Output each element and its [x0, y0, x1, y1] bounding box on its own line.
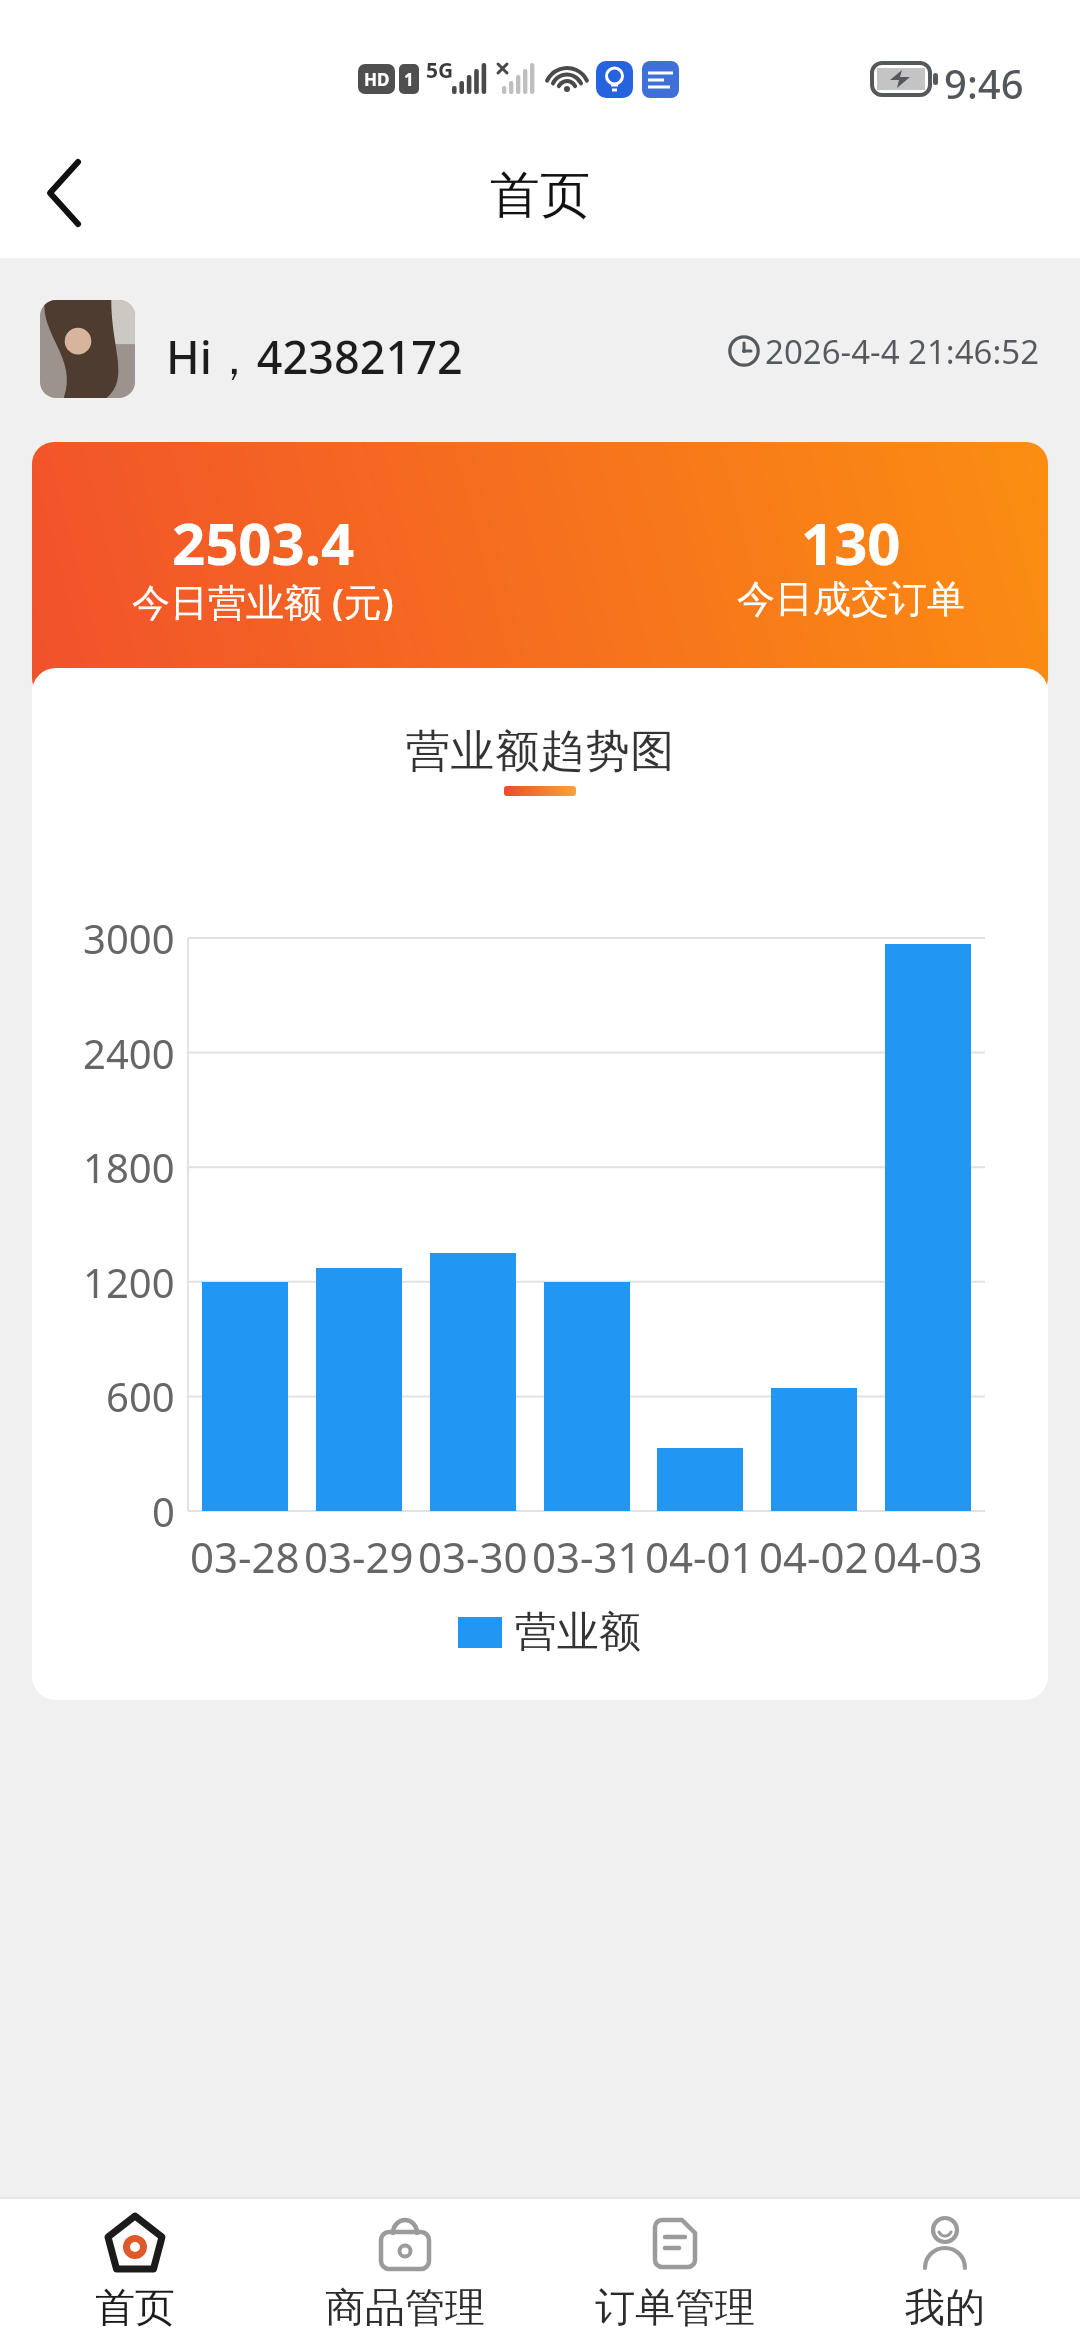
staticText: 1 — [404, 68, 414, 91]
staticText: 03-31 — [532, 1528, 642, 1582]
staticText: 订单管理 — [595, 2282, 755, 2332]
button[interactable] — [40, 300, 135, 398]
staticText: 03-28 — [190, 1528, 300, 1582]
staticText: 04-03 — [873, 1528, 983, 1582]
staticText: HD — [364, 68, 390, 91]
staticText: 03-29 — [304, 1528, 414, 1582]
staticText: 9:46 — [944, 56, 1024, 100]
staticText: 03-30 — [418, 1528, 528, 1582]
staticText: 2503.4 — [172, 503, 355, 571]
staticText: 04-01 — [645, 1528, 755, 1582]
button[interactable] — [30, 150, 100, 236]
staticText: 3000 — [83, 911, 175, 965]
button[interactable]: 订单管理 — [540, 2199, 810, 2340]
button[interactable]: 首页 — [0, 2199, 270, 2340]
staticText: 1200 — [83, 1255, 175, 1309]
staticText: 5G — [426, 56, 454, 84]
staticText: 0 — [152, 1484, 175, 1538]
button[interactable]: 2503.4 — [32, 442, 1048, 700]
staticText: 营业额趋势图 — [405, 724, 675, 779]
staticText: 2400 — [83, 1026, 175, 1080]
staticText: 营业额 — [515, 1606, 641, 1659]
staticText: 商品管理 — [325, 2282, 485, 2332]
button[interactable]: 我的 — [810, 2199, 1080, 2340]
staticText: 首页 — [490, 164, 590, 222]
staticText: 130 — [801, 503, 901, 571]
staticText: 600 — [106, 1369, 175, 1423]
staticText: 04-02 — [759, 1528, 869, 1582]
staticText: 1800 — [83, 1140, 175, 1194]
button[interactable]: 商品管理 — [270, 2199, 540, 2340]
staticText: 今日成交订单 — [737, 575, 965, 621]
staticText: 首页 — [95, 2282, 175, 2332]
staticText: 今日营业额 (元) — [132, 575, 394, 621]
staticText: 2026-4-4 21:46:52 — [765, 329, 1040, 373]
staticText: 我的 — [905, 2282, 985, 2332]
staticText: Hi，42382172 — [166, 326, 463, 380]
